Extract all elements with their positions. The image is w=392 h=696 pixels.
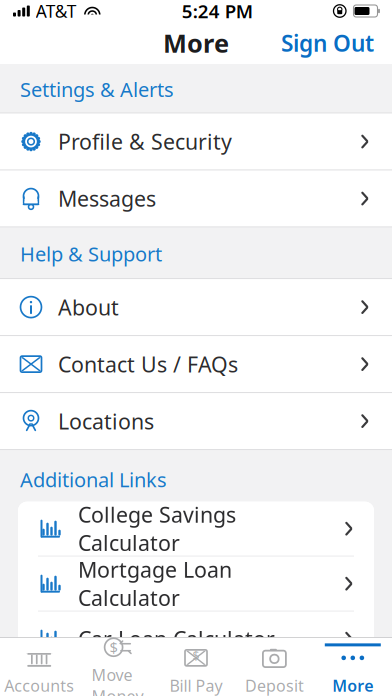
button[interactable]: $ [157, 639, 235, 695]
staticText: About [58, 293, 119, 321]
staticText: Car Loan Calculator [78, 624, 275, 653]
staticText: $ [192, 648, 199, 664]
staticText: College Savings Calculator [78, 500, 236, 557]
staticText: Locations [58, 407, 154, 435]
button[interactable]: About [0, 279, 392, 335]
staticText: Bill Pay [169, 675, 222, 696]
button[interactable]: Retirement Calculator [18, 667, 374, 696]
staticText: Retirement Calculator [78, 679, 298, 696]
button[interactable]: College Savings Calculator [18, 502, 374, 556]
staticText: More [332, 675, 373, 696]
button[interactable]: Messages [0, 171, 392, 227]
staticText: Sign Out [281, 28, 374, 58]
staticText: 5:24 PM [182, 0, 253, 23]
staticText: Mortgage Loan Calculator [78, 555, 232, 612]
button[interactable]: Sign Out [267, 20, 388, 66]
staticText: Contact Us / FAQs [58, 350, 238, 378]
button[interactable]: More [314, 639, 392, 695]
button[interactable]: Contact Us / FAQs [0, 336, 392, 392]
staticText: Settings & Alerts [20, 76, 174, 103]
staticText: $ [110, 637, 118, 657]
staticText: AT&T [36, 0, 77, 22]
button[interactable]: Mortgage Loan Calculator [18, 557, 374, 611]
button[interactable]: Deposit [235, 639, 314, 695]
staticText: Messages [58, 184, 156, 213]
button[interactable]: $ [78, 639, 157, 695]
staticText: Profile & Security [58, 127, 232, 156]
button[interactable]: Profile & Security [0, 114, 392, 170]
staticText: Additional Links [20, 466, 167, 493]
staticText: Accounts [4, 675, 74, 696]
button[interactable]: Locations [0, 393, 392, 449]
staticText: More [163, 26, 229, 60]
staticText: Move Money [92, 664, 144, 696]
button[interactable]: Car Loan Calculator [18, 612, 374, 666]
button[interactable]: Accounts [0, 639, 78, 695]
staticText: Deposit [245, 675, 304, 696]
staticText: Help & Support [20, 241, 162, 267]
